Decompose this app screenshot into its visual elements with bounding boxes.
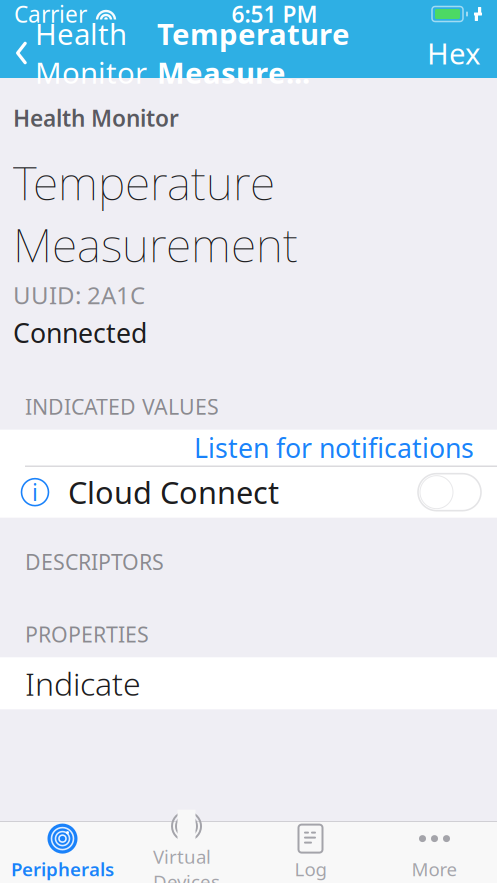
button[interactable]: Listen for notifications: [0, 430, 497, 466]
staticText: DESCRIPTORS: [25, 548, 164, 576]
staticText: UUID: 2A1C: [13, 279, 145, 311]
button[interactable]: Health Monitor: [0, 6, 147, 100]
button[interactable]: Information: [0, 470, 49, 514]
button[interactable]: Log: [248, 822, 372, 883]
staticText: Log: [294, 857, 326, 881]
staticText: Carrier: [14, 0, 87, 29]
button[interactable]: More: [372, 822, 496, 883]
staticText: Virtual Devices: [153, 844, 220, 883]
staticText: Hex: [427, 33, 481, 72]
staticText: i: [32, 477, 38, 507]
staticText: Cloud Connect: [68, 472, 279, 512]
staticText: Temperature Measure...: [157, 14, 350, 92]
button[interactable]: Cloud Connect toggle: [418, 474, 497, 511]
staticText: Indicate: [25, 662, 141, 705]
button[interactable]: Peripherals: [0, 822, 124, 883]
staticText: INDICATED VALUES: [25, 392, 219, 421]
staticText: 6:51 PM: [231, 0, 317, 29]
staticText: Listen for notifications: [194, 430, 474, 465]
staticText: Connected: [13, 315, 147, 350]
staticText: More: [411, 857, 457, 881]
staticText: Temperature Measurement: [13, 151, 298, 275]
staticText: PROPERTIES: [25, 620, 149, 648]
staticText: Health Monitor: [13, 103, 179, 133]
button[interactable]: Virtual Devices: [124, 822, 248, 883]
staticText: Peripherals: [11, 857, 114, 881]
staticText: Health Monitor: [35, 14, 147, 92]
button[interactable]: Hex: [427, 25, 497, 80]
